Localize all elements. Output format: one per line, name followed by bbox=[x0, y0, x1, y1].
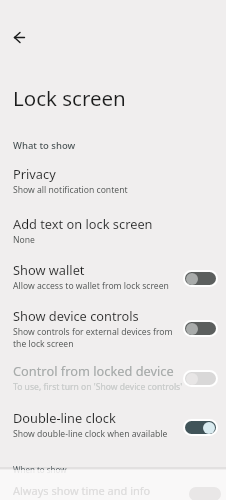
staticText: Always show time and info bbox=[13, 483, 151, 498]
button[interactable]: Show device controls bbox=[0, 298, 226, 356]
staticText: To use, first turn on 'Show device contr… bbox=[13, 381, 183, 393]
staticText: Show device controls bbox=[13, 307, 139, 324]
staticText: Add text on lock screen bbox=[13, 215, 153, 232]
button[interactable]: Show wallet bbox=[0, 252, 226, 298]
button[interactable]: Double-line clock bbox=[0, 400, 226, 446]
staticText: What to show bbox=[13, 139, 76, 152]
staticText: None bbox=[13, 234, 35, 246]
button[interactable]: Control from locked device bbox=[0, 353, 226, 400]
staticText: Double-line clock bbox=[13, 409, 116, 426]
staticText: the lock screen bbox=[13, 338, 74, 350]
button[interactable] bbox=[6, 24, 32, 50]
staticText: When to show bbox=[13, 464, 67, 475]
staticText: Allow access to wallet from lock screen bbox=[13, 280, 169, 292]
staticText: Show double-line clock when available bbox=[13, 428, 168, 440]
staticText: Show controls for external devices from bbox=[13, 326, 173, 338]
staticText: Privacy bbox=[13, 165, 56, 182]
button[interactable]: Privacy bbox=[0, 156, 226, 202]
staticText: Control from locked device bbox=[13, 362, 174, 379]
staticText: Lock screen bbox=[13, 84, 126, 112]
staticText: Show all notification content bbox=[13, 184, 128, 196]
button[interactable]: Add text on lock screen bbox=[0, 206, 226, 252]
staticText: Show wallet bbox=[13, 261, 85, 278]
